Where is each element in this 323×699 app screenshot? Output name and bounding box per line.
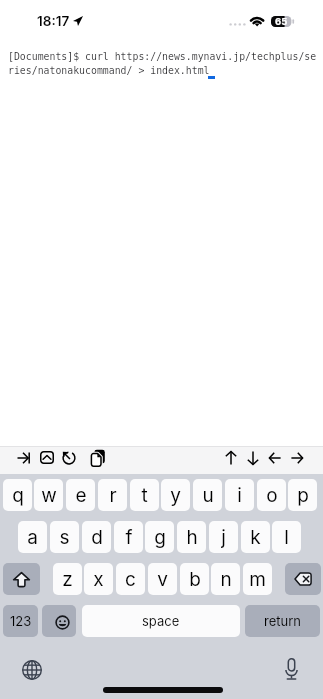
button[interactable]: m <box>243 563 272 595</box>
button[interactable]: l <box>272 521 301 553</box>
button[interactable]: space <box>82 605 240 637</box>
button[interactable]: h <box>177 521 206 553</box>
button[interactable]: p <box>288 479 317 511</box>
button[interactable]: o <box>257 479 286 511</box>
staticText: x <box>93 568 104 591</box>
staticText: 123 <box>10 613 32 629</box>
button[interactable]: g <box>145 521 174 553</box>
button[interactable]: x <box>84 563 113 595</box>
button[interactable]: Arrow up <box>223 447 238 468</box>
staticText: 65 <box>275 16 288 27</box>
staticText: return <box>264 613 301 629</box>
button[interactable]: j <box>209 521 238 553</box>
staticText: g <box>154 526 166 549</box>
button[interactable]: b <box>180 563 209 595</box>
button[interactable]: q <box>3 479 32 511</box>
staticText: z <box>62 568 73 591</box>
button[interactable]: Command history <box>61 447 76 468</box>
staticText: l <box>284 526 289 549</box>
button[interactable]: f <box>114 521 143 553</box>
button[interactable]: u <box>193 479 222 511</box>
button[interactable]: Shift <box>3 563 40 595</box>
button[interactable]: a <box>18 521 47 553</box>
button[interactable]: c <box>116 563 145 595</box>
staticText: u <box>202 484 214 507</box>
button[interactable]: Dictation <box>281 656 301 682</box>
button[interactable]: Arrow left <box>267 447 282 468</box>
button[interactable]: i <box>225 479 254 511</box>
button[interactable]: Emoji <box>42 605 76 637</box>
button[interactable]: n <box>211 563 240 595</box>
staticText: w <box>41 484 57 507</box>
button[interactable]: r <box>98 479 127 511</box>
button[interactable]: Insert tab <box>16 447 31 468</box>
button[interactable]: w <box>34 479 63 511</box>
button[interactable]: e <box>66 479 95 511</box>
button[interactable]: Paste <box>90 447 105 468</box>
staticText: b <box>189 568 201 591</box>
staticText: p <box>297 484 309 507</box>
staticText: f <box>125 526 133 549</box>
staticText: t <box>141 484 148 507</box>
staticText: c <box>125 568 136 591</box>
button[interactable]: 123 <box>3 605 38 637</box>
button[interactable]: Backspace <box>285 563 321 595</box>
button[interactable]: Arrow down <box>245 447 260 468</box>
staticText: e <box>75 484 87 507</box>
staticText: o <box>266 484 278 507</box>
staticText: a <box>27 526 38 549</box>
button[interactable]: s <box>50 521 79 553</box>
button[interactable]: z <box>53 563 82 595</box>
button[interactable]: Next keyboard <box>21 659 43 681</box>
staticText: m <box>249 568 266 591</box>
staticText: v <box>157 568 168 591</box>
staticText: n <box>220 568 232 591</box>
staticText: [Documents]$ curl https://news.mynavi.jp… <box>8 51 317 76</box>
staticText: y <box>170 484 181 507</box>
staticText: space <box>142 613 180 629</box>
staticText: 18:17 <box>37 13 70 29</box>
button[interactable]: d <box>82 521 111 553</box>
staticText: r <box>109 484 117 507</box>
button[interactable]: y <box>161 479 190 511</box>
staticText: i <box>237 484 242 507</box>
button[interactable]: Arrow right <box>289 447 304 468</box>
staticText: k <box>250 526 261 549</box>
button[interactable]: return <box>245 605 320 637</box>
staticText: q <box>12 484 24 507</box>
staticText: j <box>221 526 226 549</box>
button[interactable]: t <box>130 479 159 511</box>
button[interactable]: Control key <box>39 447 54 468</box>
button[interactable]: v <box>148 563 177 595</box>
staticText: d <box>91 526 103 549</box>
staticText: h <box>186 526 198 549</box>
button[interactable]: k <box>241 521 270 553</box>
staticText: s <box>59 526 70 549</box>
